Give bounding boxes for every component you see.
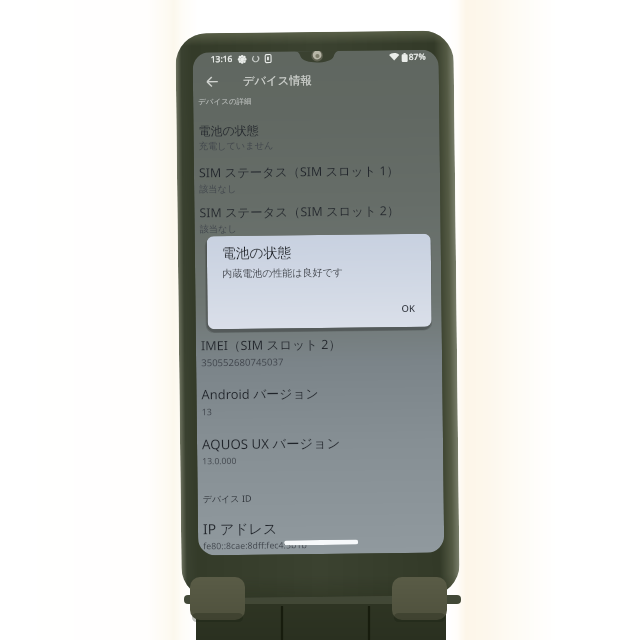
staticText: IP アドレス: [203, 518, 278, 538]
staticText: 350552680745037: [201, 355, 284, 369]
staticText: 該当なし: [199, 223, 238, 235]
button[interactable]: IMEI（SIM スロット 2）: [201, 335, 442, 369]
button[interactable]: Android バージョン: [201, 383, 443, 417]
staticText: 13.0.000: [202, 455, 237, 467]
button[interactable]: デバイス ID: [203, 492, 252, 504]
staticText: 13:16: [211, 53, 233, 65]
staticText: fe80::8cae:8dff:fec4:5b1b: [203, 539, 307, 552]
staticText: 電池の状態: [222, 244, 292, 262]
staticText: デバイスの詳細: [198, 97, 252, 106]
staticText: 内蔵電池の性能は良好です: [222, 266, 343, 280]
staticText: OK: [401, 302, 415, 315]
staticText: 該当なし: [199, 183, 237, 195]
button[interactable]: IP アドレス: [203, 517, 444, 552]
button[interactable]: SIM ステータス（SIM スロット 2）: [199, 202, 441, 235]
staticText: IMEI（SIM スロット 2）: [201, 336, 342, 354]
button[interactable]: 電池の状態: [198, 121, 440, 152]
staticText: AQUOS UX バージョン: [202, 434, 341, 453]
staticText: デバイス情報: [243, 73, 312, 88]
staticText: デバイス ID: [203, 492, 252, 504]
staticText: SIM ステータス（SIM スロット 2）: [199, 202, 399, 221]
staticText: 87%: [409, 51, 426, 63]
button[interactable]: SIM ステータス（SIM スロット 1）: [199, 162, 440, 195]
staticText: 充電していません: [199, 139, 274, 152]
button[interactable]: Back: [194, 66, 230, 96]
staticText: 13: [202, 405, 213, 417]
button[interactable]: AQUOS UX バージョン: [202, 433, 443, 467]
staticText: 電池の状態: [198, 123, 260, 138]
staticText: Android バージョン: [201, 384, 320, 403]
staticText: SIM ステータス（SIM スロット 1）: [199, 162, 399, 181]
button[interactable]: OK: [392, 296, 425, 321]
